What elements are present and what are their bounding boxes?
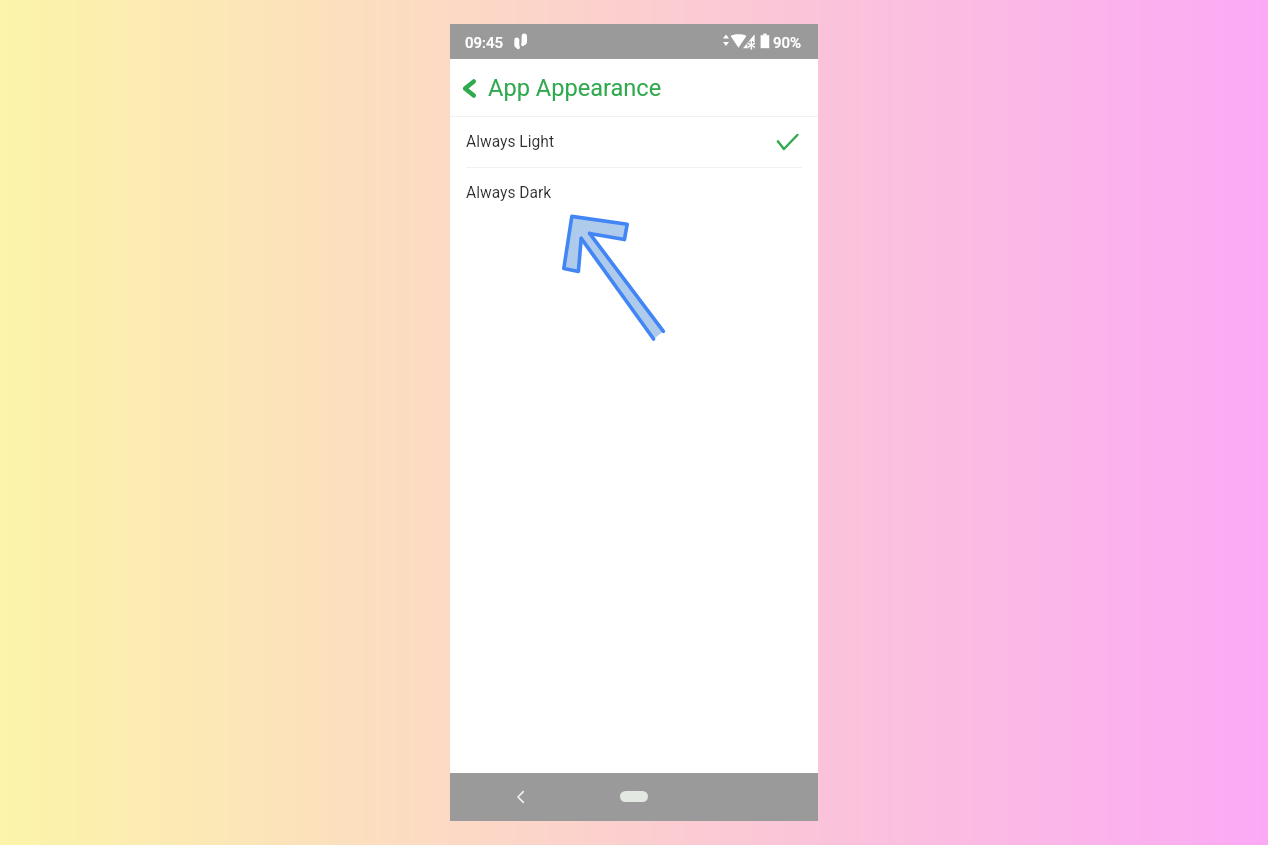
staticText: 90% [773, 34, 802, 52]
staticText: 09:45 [465, 34, 504, 52]
button[interactable]: Back [453, 69, 485, 107]
button[interactable]: Always Light [450, 117, 818, 167]
button[interactable]: Back [507, 784, 533, 810]
staticText: Always Dark [466, 184, 552, 202]
staticText: App Appearance [488, 74, 662, 102]
staticText: Always Light [466, 133, 554, 151]
button[interactable]: Home [620, 791, 648, 802]
button[interactable]: Always Dark [450, 168, 818, 218]
